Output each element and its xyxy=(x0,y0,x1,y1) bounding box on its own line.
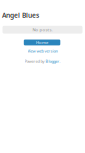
button[interactable]: Blogger xyxy=(45,59,59,64)
staticText: Blogger xyxy=(45,59,59,64)
staticText: Angel Blues xyxy=(2,10,39,20)
button[interactable]: View web version xyxy=(0,49,85,53)
staticText: View web version xyxy=(27,48,57,54)
staticText: Home xyxy=(36,39,48,45)
button[interactable]: Home xyxy=(24,39,60,45)
staticText: No posts. xyxy=(32,27,52,33)
staticText: Powered by xyxy=(24,59,45,64)
